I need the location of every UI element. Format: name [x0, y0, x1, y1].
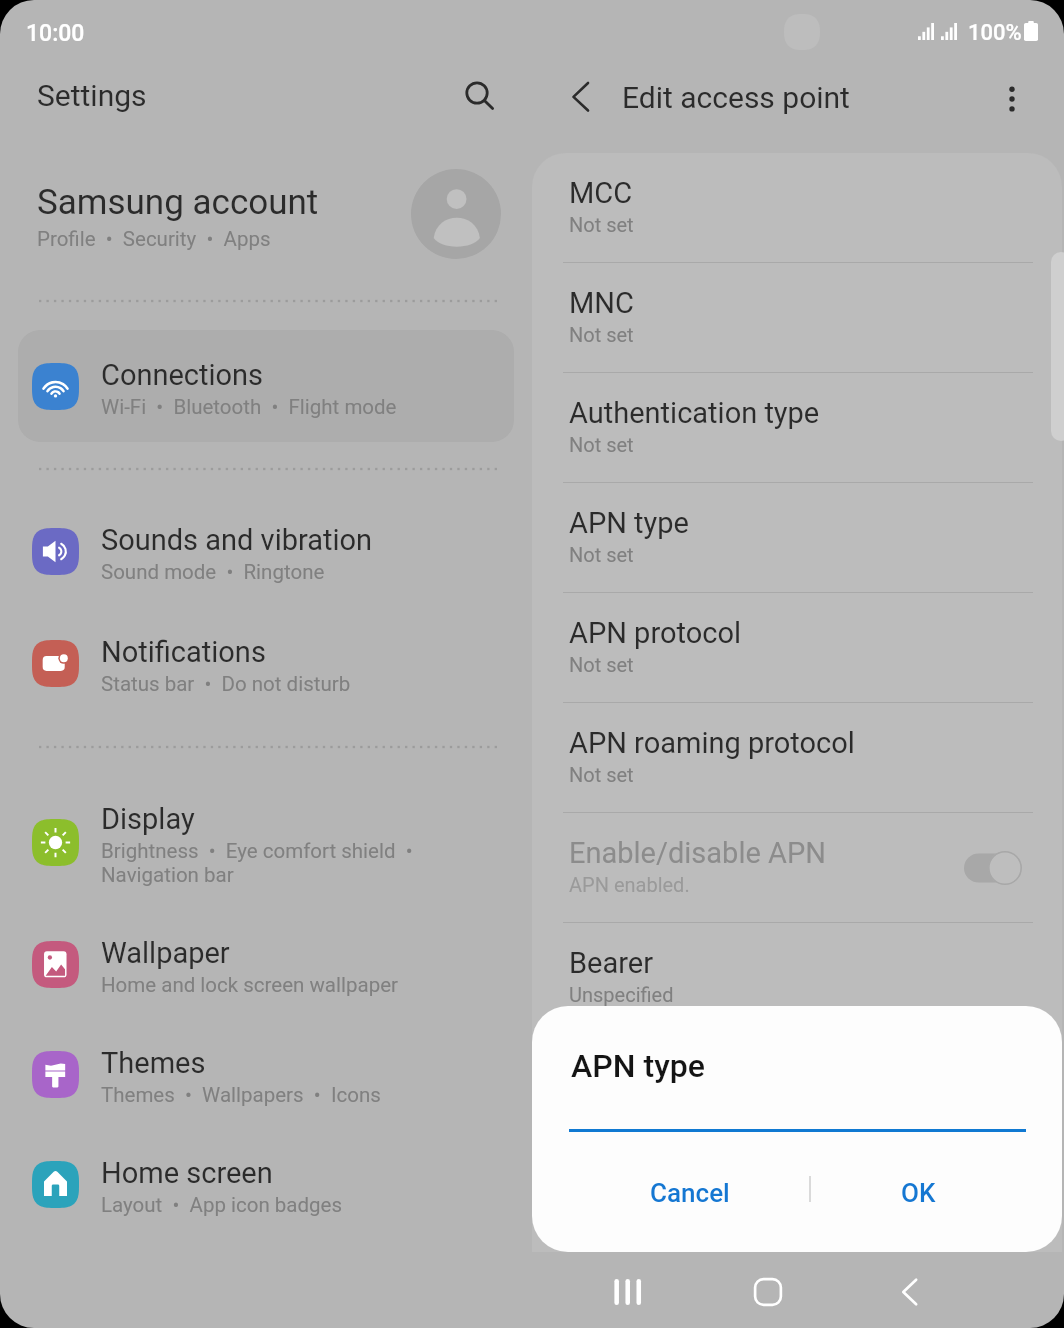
button[interactable]: Enable/disable APN	[532, 813, 1062, 923]
staticText: Themes • Wallpapers • Icons	[101, 1083, 381, 1107]
button[interactable]: Sounds and vibration	[0, 495, 532, 607]
staticText: APN protocol	[569, 616, 741, 650]
button[interactable]: Enable APN	[964, 848, 1026, 888]
staticText: Themes	[101, 1046, 206, 1080]
staticText: Not set	[569, 543, 634, 566]
button[interactable]: Home	[728, 1253, 808, 1328]
button[interactable]: Search	[451, 67, 507, 123]
button[interactable]: Recents	[587, 1253, 667, 1328]
button[interactable]: Wallpaper	[0, 908, 532, 1020]
button[interactable]: Display	[0, 786, 532, 898]
staticText: Sound mode • Ringtone	[101, 560, 325, 584]
staticText: MCC	[569, 176, 633, 210]
button[interactable]: APN roaming protocol	[532, 703, 1062, 813]
staticText: Wallpaper	[101, 936, 230, 970]
staticText: Wi-Fi • Bluetooth • Flight mode	[101, 395, 397, 419]
button[interactable]: Samsung account	[0, 157, 532, 271]
staticText: APN type	[569, 506, 689, 540]
button[interactable]: Authentication type	[532, 373, 1062, 483]
button[interactable]: Back	[870, 1253, 950, 1328]
staticText: APN enabled.	[569, 873, 690, 896]
staticText: Cancel	[650, 1178, 730, 1208]
staticText: Display	[101, 802, 195, 836]
button[interactable]: Cancel	[594, 1154, 785, 1232]
staticText: Status bar • Do not disturb	[101, 672, 351, 696]
staticText: MNC	[569, 286, 634, 320]
staticText: Settings	[37, 78, 147, 113]
staticText: Layout • App icon badges	[101, 1193, 343, 1217]
staticText: Not set	[569, 323, 634, 346]
staticText: Not set	[569, 213, 634, 236]
staticText: Sounds and vibration	[101, 523, 373, 557]
staticText: Not set	[569, 433, 634, 456]
staticText: 10:00	[26, 20, 85, 47]
button[interactable]: Back	[556, 72, 610, 126]
button[interactable]: Home screen	[0, 1128, 532, 1240]
button[interactable]: OK	[823, 1154, 1014, 1232]
staticText: 100%	[968, 20, 1022, 46]
staticText: OK	[901, 1178, 936, 1208]
staticText: Samsung account	[37, 182, 319, 223]
staticText: Brightness • Eye comfort shield •	[101, 839, 413, 863]
staticText: Bearer	[569, 946, 653, 980]
staticText: Edit access point	[622, 80, 850, 115]
staticText: Connections	[101, 358, 264, 392]
staticText: Authentication type	[569, 396, 820, 430]
button[interactable]: MCC	[532, 153, 1062, 263]
staticText: Enable/disable APN	[569, 836, 826, 870]
button[interactable]: Notifications	[0, 607, 532, 719]
button[interactable]: APN type	[532, 483, 1062, 593]
staticText: Navigation bar	[101, 863, 234, 887]
staticText: Unspecified	[569, 983, 674, 1006]
staticText: Home screen	[101, 1156, 273, 1190]
staticText: Home and lock screen wallpaper	[101, 973, 398, 997]
button[interactable]: Bearer	[532, 923, 1062, 1033]
staticText: Not set	[569, 653, 634, 676]
staticText: Profile • Security • Apps	[37, 227, 271, 251]
staticText: Not set	[569, 763, 634, 786]
button[interactable]: More options	[985, 72, 1039, 126]
button[interactable]: APN protocol	[532, 593, 1062, 703]
staticText: APN roaming protocol	[569, 726, 855, 760]
button[interactable]: Connections	[18, 330, 514, 442]
staticText: Notifications	[101, 635, 266, 669]
button[interactable]: MNC	[532, 263, 1062, 373]
button[interactable]: Themes	[0, 1018, 532, 1130]
staticText: APN type	[571, 1047, 705, 1085]
